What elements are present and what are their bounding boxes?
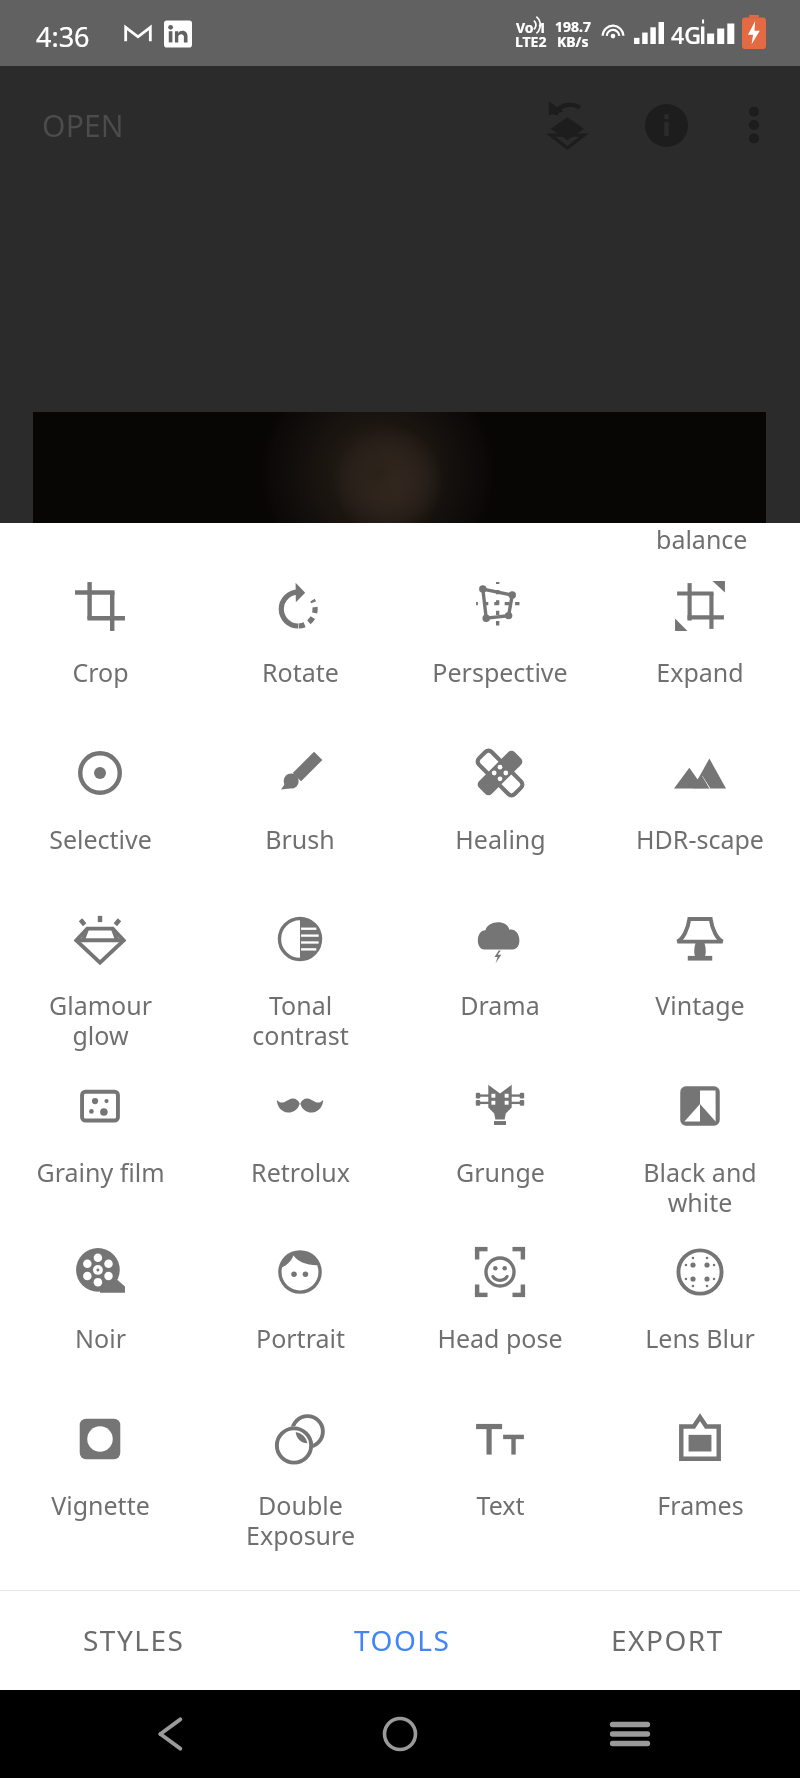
staticText: Vignette <box>51 1488 150 1522</box>
staticText: Vo <box>516 18 534 37</box>
staticText: Perspective <box>432 655 568 689</box>
staticText: STYLES <box>83 1621 185 1659</box>
button[interactable]: Retrolux <box>200 1054 400 1189</box>
button[interactable]: Back <box>106 1690 234 1778</box>
staticText: Grunge <box>456 1155 545 1189</box>
button[interactable]: EXPORT <box>541 1590 793 1689</box>
staticText: TOOLS <box>354 1621 451 1659</box>
staticText: OPEN <box>42 105 124 146</box>
staticText: Rotate <box>262 655 339 689</box>
staticText: Vintage <box>655 988 745 1022</box>
button[interactable]: Selective <box>0 721 200 856</box>
staticText: HDR-scape <box>636 822 764 856</box>
staticText: KB/s <box>557 32 589 51</box>
button[interactable]: Rotate <box>200 554 400 689</box>
button[interactable]: Grunge <box>400 1054 600 1189</box>
staticText: 4:36 <box>36 18 90 55</box>
button[interactable]: HDR-scape <box>600 721 800 856</box>
staticText: Selective <box>49 822 152 856</box>
button[interactable]: Text <box>400 1387 600 1522</box>
staticText: Retrolux <box>251 1155 350 1189</box>
button[interactable]: Crop <box>0 554 200 689</box>
staticText: 198.7 <box>555 17 591 36</box>
staticText: Brush <box>265 822 335 856</box>
staticText: Frames <box>657 1488 744 1522</box>
button[interactable]: Info <box>618 66 714 184</box>
button[interactable]: OPEN <box>16 66 150 184</box>
button[interactable]: Brush <box>200 721 400 856</box>
staticText: Tonal contrast <box>252 988 349 1052</box>
button[interactable]: Undo <box>517 66 613 184</box>
staticText: Text <box>476 1488 525 1522</box>
button[interactable]: Recent apps <box>566 1690 694 1778</box>
button[interactable]: TOOLS <box>276 1590 528 1689</box>
staticText: EXPORT <box>611 1621 724 1659</box>
button[interactable]: Home <box>336 1690 464 1778</box>
staticText: Double Exposure <box>246 1488 355 1552</box>
button[interactable]: Portrait <box>200 1220 400 1355</box>
staticText: Head pose <box>437 1321 563 1355</box>
button[interactable]: Tonal contrast <box>200 887 400 1052</box>
button[interactable]: Noir <box>0 1220 200 1355</box>
staticText: 4G <box>671 19 701 50</box>
button[interactable]: Double Exposure <box>200 1387 400 1552</box>
staticText: balance <box>656 522 748 556</box>
staticText: Portrait <box>256 1321 345 1355</box>
button[interactable]: STYLES <box>8 1590 260 1689</box>
button[interactable]: Black and white <box>600 1054 800 1219</box>
staticText: Lens Blur <box>645 1321 755 1355</box>
button[interactable]: Healing <box>400 721 600 856</box>
staticText: Grainy film <box>36 1155 165 1189</box>
button[interactable]: Frames <box>600 1387 800 1522</box>
button[interactable]: Perspective <box>400 554 600 689</box>
button[interactable]: Grainy film <box>0 1054 200 1189</box>
staticText: LTE2 <box>515 32 547 51</box>
button[interactable]: Glamour glow <box>0 887 200 1052</box>
button[interactable]: Vintage <box>600 887 800 1022</box>
staticText: Drama <box>460 988 540 1022</box>
button[interactable]: Vignette <box>0 1387 200 1522</box>
staticText: 1 <box>538 18 547 37</box>
button[interactable]: Expand <box>600 554 800 689</box>
staticText: Healing <box>455 822 546 856</box>
staticText: Expand <box>656 655 744 689</box>
staticText: Noir <box>75 1321 126 1355</box>
button[interactable]: Drama <box>400 887 600 1022</box>
staticText: Crop <box>72 655 129 689</box>
button[interactable]: Head pose <box>400 1220 600 1355</box>
button[interactable]: Lens Blur <box>600 1220 800 1355</box>
staticText: Glamour glow <box>49 988 152 1052</box>
staticText: Black and white <box>643 1155 757 1219</box>
